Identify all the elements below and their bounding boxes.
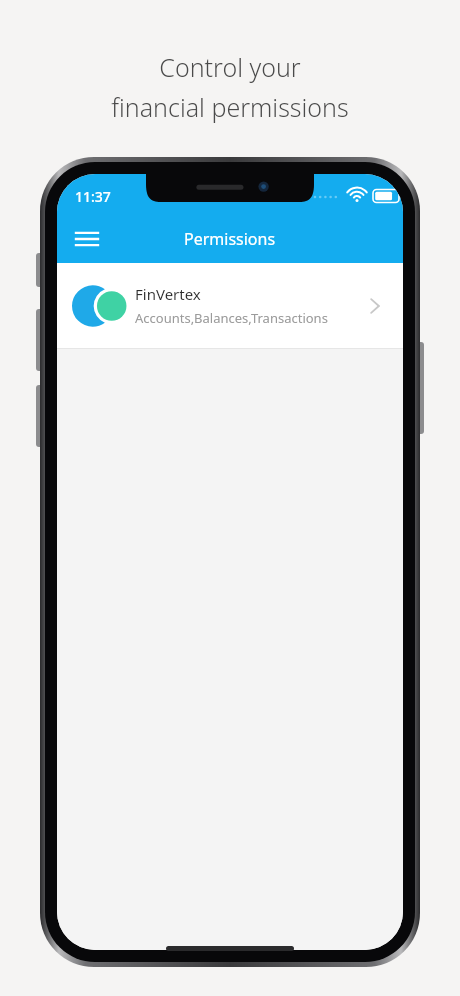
staticText: Permissions xyxy=(184,228,276,250)
staticText: FinVertex xyxy=(135,284,201,304)
staticText: Accounts,Balances,Transactions xyxy=(135,309,328,327)
staticText: 11:37 xyxy=(75,187,111,206)
button[interactable]: FinVertex xyxy=(57,263,403,348)
other: Open FinVertex permissions xyxy=(361,292,389,320)
button[interactable]: Open navigation menu xyxy=(65,217,109,261)
staticText: Control your xyxy=(159,50,301,84)
staticText: financial permissions xyxy=(111,90,349,124)
